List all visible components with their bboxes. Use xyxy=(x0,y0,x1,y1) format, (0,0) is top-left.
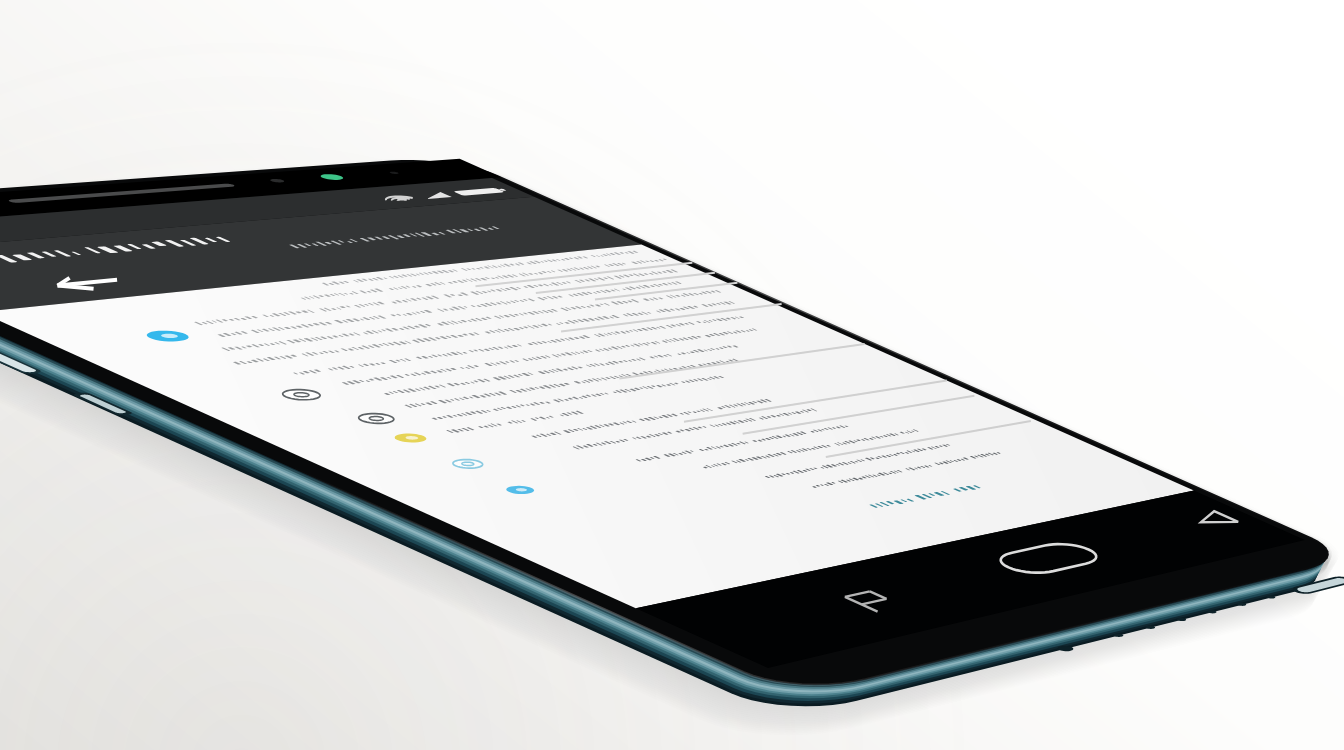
button[interactable]: Home xyxy=(956,531,1148,589)
button[interactable]: Back navigation xyxy=(1152,501,1280,543)
button[interactable]: Oil pressure entry xyxy=(132,302,847,422)
button[interactable]: Recent apps xyxy=(785,575,957,628)
button[interactable]: Diagnostics entry xyxy=(475,430,1194,608)
button[interactable]: Coolant temperature entry xyxy=(223,336,919,461)
button[interactable]: Back xyxy=(0,262,199,304)
button[interactable]: Engine status entry xyxy=(18,259,770,381)
button[interactable]: Fuel level entry xyxy=(388,398,1059,536)
button[interactable]: Battery voltage entry xyxy=(310,369,985,497)
